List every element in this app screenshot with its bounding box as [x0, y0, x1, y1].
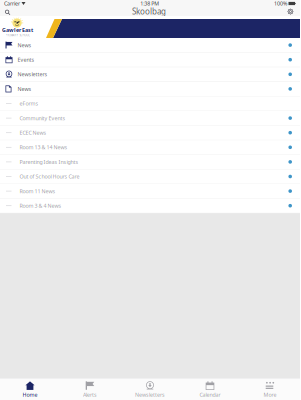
staticText: Calendar	[199, 391, 220, 398]
button[interactable]: Room 11 News	[0, 184, 300, 199]
button[interactable]: Home	[0, 378, 60, 400]
staticText: eForms	[19, 100, 38, 107]
button[interactable]: Community Events	[0, 111, 300, 126]
staticText: Carrier	[4, 0, 20, 7]
staticText: Gawler East	[2, 26, 33, 33]
staticText: Home	[22, 391, 37, 398]
button[interactable]: Settings	[286, 7, 297, 16]
staticText: Out of School Hours Care	[19, 173, 79, 180]
button[interactable]: Search	[3, 7, 12, 16]
staticText: 100%	[274, 0, 287, 7]
button[interactable]: News	[0, 82, 300, 96]
staticText: Skoolbag	[132, 6, 166, 17]
staticText: News	[17, 42, 31, 49]
staticText: PRIMARY SCHOOL	[5, 33, 29, 37]
staticText: More	[263, 391, 276, 398]
staticText: Newsletters	[17, 71, 47, 78]
staticText: Room 13 & 14 News	[19, 144, 67, 151]
staticText: Events	[17, 56, 34, 63]
staticText: Room 11 News	[19, 188, 55, 195]
staticText: News	[17, 85, 31, 92]
button[interactable]: Newsletters	[120, 378, 180, 400]
button[interactable]: Room 13 & 14 News	[0, 140, 300, 155]
staticText: Alerts	[83, 391, 97, 398]
staticText: Newsletters	[135, 391, 165, 398]
button[interactable]: Parenting Ideas Insights	[0, 155, 300, 169]
staticText: Parenting Ideas Insights	[19, 158, 78, 165]
button[interactable]: Alerts	[60, 378, 120, 400]
staticText: 1:38 PM	[140, 0, 159, 7]
button[interactable]: ECEC News	[0, 126, 300, 140]
button[interactable]: Out of School Hours Care	[0, 169, 300, 184]
button[interactable]: eForms	[0, 96, 300, 111]
staticText: Community Events	[19, 115, 65, 122]
button[interactable]: Newsletters	[0, 67, 300, 82]
button[interactable]: News	[0, 38, 300, 53]
button[interactable]: More	[240, 378, 300, 400]
staticText: ECEC News	[19, 129, 46, 136]
button[interactable]: Events	[0, 53, 300, 67]
staticText: Room 3 & 4 News	[19, 202, 61, 209]
button[interactable]: Room 3 & 4 News	[0, 199, 300, 213]
button[interactable]: Calendar	[180, 378, 240, 400]
